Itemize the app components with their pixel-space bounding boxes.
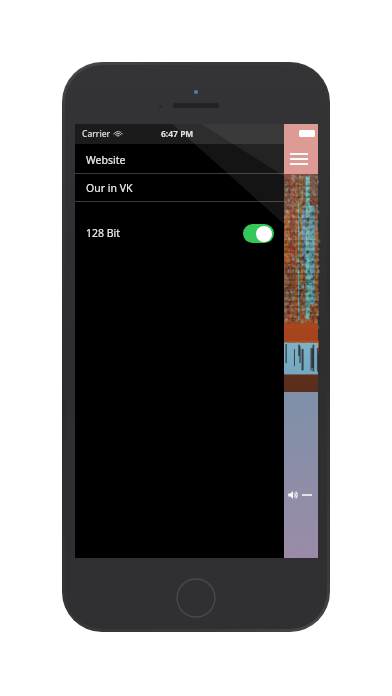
- staticText: Carrier: [82, 128, 111, 140]
- button[interactable]: Our in VK: [75, 174, 284, 201]
- staticText: 6:47 PM: [161, 128, 194, 140]
- button[interactable]: 128 Bit: [75, 218, 284, 248]
- staticText: Website: [86, 153, 126, 167]
- button[interactable]: Menu: [284, 124, 318, 174]
- button[interactable]: Volume: [284, 487, 318, 503]
- button[interactable]: 128 Bit enabled: [243, 224, 274, 243]
- staticText: 128 Bit: [86, 226, 121, 240]
- button[interactable]: Website: [75, 146, 284, 173]
- staticText: Our in VK: [86, 181, 133, 195]
